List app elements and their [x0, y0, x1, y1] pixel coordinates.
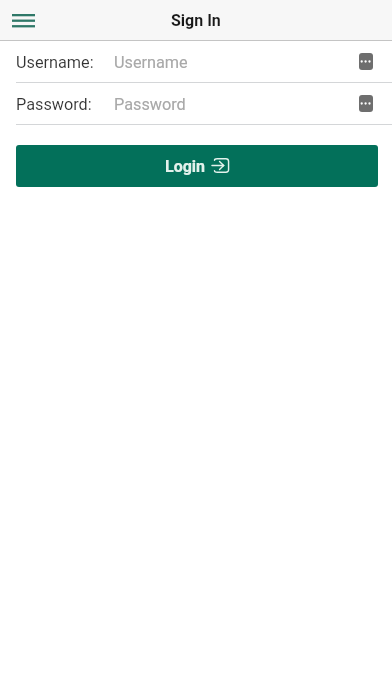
- staticText: Username:: [16, 53, 94, 72]
- staticText: Username: [114, 53, 188, 72]
- staticText: Sign In: [171, 11, 221, 30]
- button[interactable]: More options: [359, 95, 373, 112]
- staticText: Password: [114, 95, 186, 114]
- button[interactable]: Username: [114, 41, 359, 82]
- staticText: Login: [165, 157, 206, 176]
- staticText: Password:: [16, 95, 92, 114]
- button[interactable]: Open navigation menu: [0, 0, 46, 40]
- button[interactable]: Login: [16, 145, 378, 187]
- button[interactable]: More options: [359, 53, 373, 70]
- button[interactable]: Password: [114, 83, 359, 124]
